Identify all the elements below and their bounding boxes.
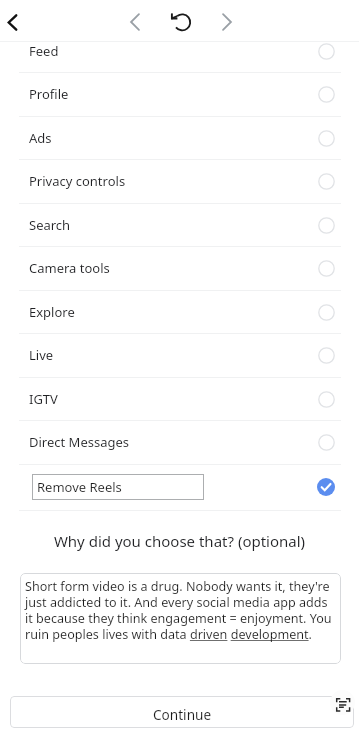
staticText: Live (29, 346, 54, 364)
staticText: Feed (29, 42, 59, 60)
staticText: Continue (153, 705, 212, 724)
button[interactable]: Close (0, 9, 25, 35)
button[interactable]: Ads (0, 116, 359, 160)
button[interactable]: Reload (168, 8, 196, 36)
staticText: Why did you choose that? (optional) (0, 531, 359, 551)
button[interactable]: Live (0, 333, 359, 377)
staticText: Direct Messages (29, 433, 130, 451)
staticText: Explore (29, 303, 75, 321)
button[interactable]: Camera tools (0, 246, 359, 290)
staticText: Ads (29, 129, 52, 147)
button[interactable]: Short form video is a drug. Nobody wants… (20, 573, 341, 664)
staticText: Privacy controls (29, 172, 126, 190)
button[interactable]: Explore (0, 290, 359, 334)
button[interactable]: IGTV (0, 377, 359, 421)
button[interactable]: Back (122, 9, 148, 35)
button[interactable]: Scan text (330, 690, 355, 715)
staticText: Short form video is a drug. Nobody wants… (25, 578, 335, 643)
button[interactable]: Profile (0, 72, 359, 116)
staticText: Search (29, 216, 71, 234)
button[interactable]: Direct Messages (0, 420, 359, 464)
staticText: Camera tools (29, 259, 110, 277)
button[interactable]: Remove Reels (0, 464, 359, 510)
button[interactable]: Forward (214, 9, 240, 35)
button[interactable]: Continue (10, 696, 354, 728)
button[interactable]: Privacy controls (0, 159, 359, 203)
staticText: Remove Reels (37, 478, 122, 496)
staticText: IGTV (29, 390, 58, 408)
button[interactable]: Search (0, 203, 359, 247)
staticText: Profile (29, 85, 69, 103)
button[interactable]: Feed (0, 29, 359, 73)
